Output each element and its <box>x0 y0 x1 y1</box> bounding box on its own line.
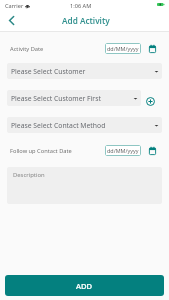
staticText: dd/MM/yyyy <box>107 45 139 52</box>
staticText: Carrier <box>5 2 24 10</box>
staticText: Please Select Customer First <box>11 94 101 103</box>
staticText: Please Select Customer <box>11 67 86 76</box>
button[interactable]: dd/MM/yyyy <box>105 145 141 156</box>
staticText: dd/MM/yyyy <box>107 147 139 154</box>
button[interactable]: Please Select Customer <box>7 63 162 79</box>
button[interactable]: Please Select Customer First <box>7 90 141 106</box>
staticText: Activity Date <box>10 45 44 53</box>
staticText: Please Select Contact Method <box>11 121 106 130</box>
button[interactable]: Pick date <box>147 44 157 54</box>
button[interactable]: Please Select Contact Method <box>7 117 162 133</box>
button[interactable]: ADD <box>5 275 164 296</box>
button[interactable]: Back <box>0 11 19 31</box>
staticText: Add Activity <box>62 15 110 26</box>
button[interactable]: dd/MM/yyyy <box>105 43 141 54</box>
staticText: Follow up Contact Date <box>10 147 72 155</box>
staticText: Description <box>13 171 45 179</box>
button[interactable]: Description <box>7 167 162 204</box>
staticText: ADD <box>76 281 93 291</box>
staticText: 1:06 AM <box>70 2 92 10</box>
button[interactable]: Add customer <box>145 96 156 107</box>
button[interactable]: Pick date <box>147 146 157 156</box>
